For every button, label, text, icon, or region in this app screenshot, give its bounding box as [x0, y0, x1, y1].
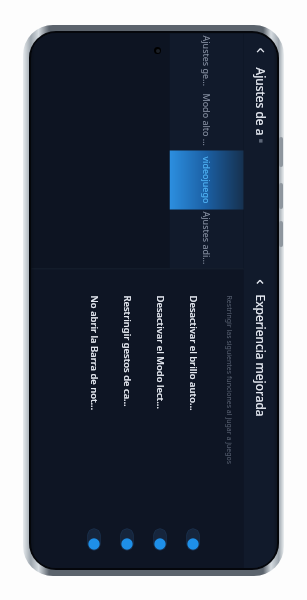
button[interactable]: Back: [243, 268, 277, 294]
button[interactable]: Desactivar el brillo automático: [176, 269, 209, 568]
button[interactable]: Desactivar el Modo lectura: [143, 269, 176, 568]
button[interactable]: Back: [243, 33, 277, 67]
button[interactable]: Activado: [186, 528, 199, 550]
button[interactable]: Activado: [120, 528, 133, 550]
button[interactable]: Activado: [153, 528, 166, 550]
staticText: No abrir la Barra de notificaciones: [87, 295, 100, 411]
staticText: Desactivar el brillo automático: [186, 295, 199, 411]
other: Power: [279, 137, 283, 167]
button[interactable]: videojuego: [169, 150, 243, 209]
button[interactable]: No abrir la Barra de notificaciones: [77, 269, 110, 568]
staticText: Restringir gestos de captura de pantalla: [120, 295, 133, 411]
staticText: Ajustes adici..: [200, 211, 212, 266]
button[interactable]: Restringir gestos de captura de pantalla: [110, 269, 143, 568]
staticText: Experiencia mejorada: [252, 294, 268, 417]
button[interactable]: Ajustes adici..: [169, 209, 243, 268]
staticText: Ajustes gener..: [200, 35, 212, 89]
staticText: Ajustes de a: [252, 67, 268, 135]
button[interactable]: Ajustes gener..: [169, 33, 243, 91]
staticText: Modo alto re..: [200, 93, 212, 148]
staticText: Restringir las siguientes funciones al j…: [223, 295, 233, 464]
other: Volume down: [279, 221, 283, 247]
button[interactable]: Modo alto re..: [169, 91, 243, 150]
staticText: ▪: [256, 138, 264, 143]
staticText: videojuego: [200, 156, 212, 203]
staticText: Desactivar el Modo lectura: [153, 295, 166, 411]
button[interactable]: Activado: [87, 528, 100, 550]
other: Volume up: [279, 183, 283, 209]
